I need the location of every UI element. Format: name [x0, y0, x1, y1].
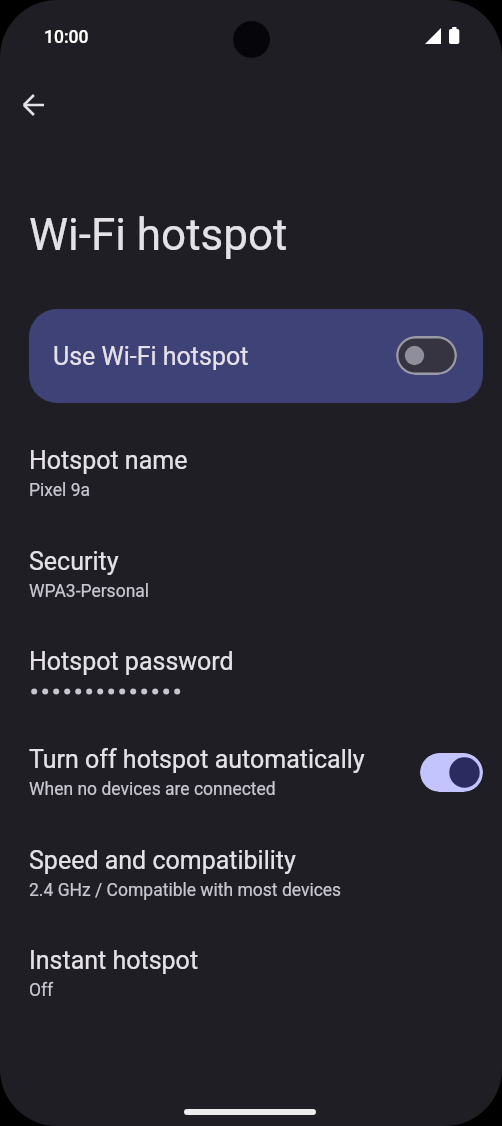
button[interactable]: Speed and compatibility: [0, 838, 502, 909]
staticText: Security: [29, 547, 119, 576]
staticText: Instant hotspot: [29, 946, 199, 975]
button[interactable]: Turn off hotspot automatically: [0, 737, 502, 808]
staticText: 10:00: [44, 27, 89, 48]
staticText: Pixel 9a: [29, 480, 91, 501]
button[interactable]: Hotspot name: [0, 438, 502, 509]
button[interactable]: Navigate up: [5, 76, 62, 133]
staticText: Wi-Fi hotspot: [29, 209, 288, 261]
staticText: Use Wi-Fi hotspot: [53, 342, 249, 371]
button[interactable]: Use Wi-Fi hotspot: [396, 336, 457, 375]
button[interactable]: Use Wi-Fi hotspot: [29, 309, 483, 403]
staticText: Off: [29, 980, 54, 1001]
button[interactable]: Turn off hotspot automatically: [420, 753, 483, 792]
staticText: Hotspot password: [29, 647, 234, 676]
staticText: WPA3-Personal: [29, 581, 150, 602]
staticText: Speed and compatibility: [29, 846, 296, 875]
staticText: Hotspot name: [29, 446, 188, 475]
staticText: 2.4 GHz / Compatible with most devices: [29, 880, 342, 901]
button[interactable]: Hotspot password: [0, 639, 502, 713]
staticText: Turn off hotspot automatically: [29, 745, 365, 774]
button[interactable]: Security: [0, 539, 502, 610]
staticText: When no devices are connected: [29, 779, 276, 800]
button[interactable]: Instant hotspot: [0, 938, 502, 1009]
